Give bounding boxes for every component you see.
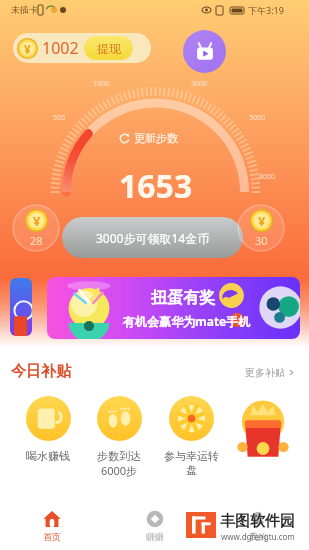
button[interactable]: 提现 [84,36,133,60]
staticText: 未插卡 [11,4,38,15]
staticText: 提现 [97,41,121,56]
staticText: 扭蛋有奖 [151,288,215,308]
button[interactable]: 扭蛋有奖 [47,277,300,339]
staticText: 赚赚 [146,531,164,542]
button[interactable]: ¥ [237,204,285,252]
button[interactable] [10,278,32,336]
staticText: 1002 [42,37,79,59]
staticText: 今日补贴 [11,362,71,381]
staticText: 3000 [191,79,208,89]
button[interactable]: 喝水赚钱 [13,396,83,463]
staticText: ¥ [258,212,266,230]
staticText: 我的 [249,531,267,542]
button[interactable]: 步数到达 6000步 [84,396,154,478]
staticText: ¥ [33,212,41,230]
staticText: 有机会赢华为mate手机 [123,313,251,329]
staticText: 更新步数 [134,131,178,145]
button[interactable]: 更多补贴 [245,366,295,379]
staticText: 3000步可领取14金币 [96,230,210,246]
button[interactable]: ¥ [13,33,151,63]
staticText: 更多补贴 [245,366,285,379]
staticText: 5000 [249,113,266,123]
button[interactable] [228,396,298,460]
staticText: 步数到达 6000步 [97,449,141,478]
staticText: www.dgfengtu.com [221,531,295,542]
staticText: 1000 [93,79,110,89]
staticText: 喝水赚钱 [26,449,70,463]
staticText: 8000 [259,172,276,182]
staticText: 丰图软件园 [220,512,295,531]
staticText: 500 [53,113,66,123]
button[interactable]: 参与幸运转 盘 [156,396,226,477]
staticText: 下午3:19 [248,4,284,16]
staticText: 1653 [119,164,193,208]
button[interactable]: ¥ [12,204,60,252]
button[interactable]: 3000步可领取14金币 [62,217,243,258]
button[interactable]: Watch video [183,30,226,73]
button[interactable]: 我的 [206,502,309,550]
staticText: 30 [255,233,268,248]
staticText: 参与幸运转 盘 [164,449,219,477]
staticText: 首页 [43,531,61,542]
button[interactable]: 更新步数 [119,131,178,145]
button[interactable]: 赚赚 [103,502,206,550]
staticText: ¥ [24,41,31,57]
button[interactable]: 首页 [0,502,103,550]
staticText: 28 [30,233,43,248]
